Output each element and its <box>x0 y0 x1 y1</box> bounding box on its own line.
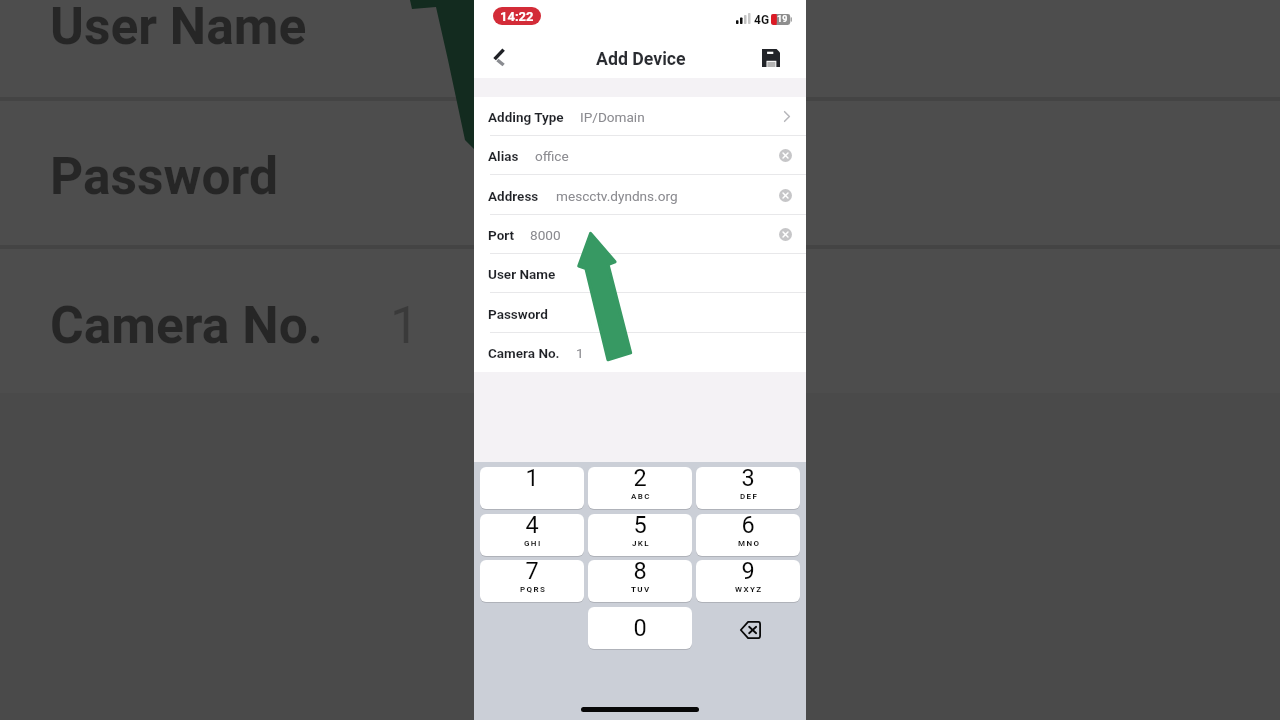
staticText: 2 <box>633 464 647 492</box>
button[interactable]: Back <box>474 36 520 78</box>
staticText: Address <box>488 188 539 204</box>
staticText: Password <box>488 306 548 322</box>
staticText: User Name <box>488 266 556 282</box>
staticText: MNO <box>738 539 761 548</box>
button[interactable]: User Name <box>474 254 806 293</box>
button[interactable]: 7 <box>480 560 584 602</box>
button[interactable]: 3 <box>696 467 800 509</box>
staticText: 1 <box>576 345 584 361</box>
staticText: 0 <box>633 614 647 642</box>
button[interactable]: 5 <box>588 514 692 556</box>
button[interactable]: Adding Type <box>474 97 806 136</box>
staticText: ABC <box>631 492 651 501</box>
button[interactable]: 0 <box>588 607 692 649</box>
staticText: Alias <box>488 148 519 164</box>
staticText: WXYZ <box>735 585 763 594</box>
staticText: Add Device <box>596 49 686 70</box>
button[interactable]: Save <box>748 37 794 79</box>
staticText: GHI <box>524 539 542 548</box>
staticText: 1 <box>525 464 539 492</box>
button[interactable]: Password <box>474 294 806 333</box>
staticText: TUV <box>631 585 651 594</box>
staticText: 3 <box>741 464 755 492</box>
staticText: User Name <box>50 0 307 56</box>
staticText: PQRS <box>520 585 547 594</box>
button[interactable]: Address <box>474 176 806 215</box>
button[interactable]: Camera No. <box>474 333 806 372</box>
staticText: Adding Type <box>488 109 564 125</box>
button[interactable]: Delete <box>696 607 800 649</box>
staticText: Camera No. <box>50 295 323 355</box>
button[interactable]: 4 <box>480 514 584 556</box>
staticText: 6 <box>741 511 755 539</box>
staticText: Password <box>50 146 278 206</box>
staticText: DEF <box>740 492 759 501</box>
staticText: 4G <box>754 13 770 27</box>
button[interactable]: 6 <box>696 514 800 556</box>
staticText: 1 <box>390 295 419 355</box>
staticText: 7 <box>525 557 539 585</box>
button[interactable]: 8 <box>588 560 692 602</box>
staticText: 4 <box>525 511 539 539</box>
staticText: 9 <box>741 557 755 585</box>
staticText: Camera No. <box>488 345 560 361</box>
staticText: 8000 <box>530 227 561 243</box>
button[interactable]: Alias <box>474 136 806 175</box>
button[interactable]: 1 <box>480 467 584 509</box>
staticText: mescctv.dyndns.org <box>556 188 678 204</box>
staticText: 14:22 <box>500 9 534 24</box>
staticText: 5 <box>633 511 647 539</box>
staticText: IP/Domain <box>580 109 645 125</box>
staticText: Port <box>488 227 515 243</box>
staticText: 8 <box>633 557 647 585</box>
button[interactable]: 2 <box>588 467 692 509</box>
button[interactable]: Port <box>474 215 806 254</box>
button[interactable]: 9 <box>696 560 800 602</box>
staticText: 19 <box>777 14 788 25</box>
staticText: office <box>535 148 569 164</box>
staticText: JKL <box>632 539 651 548</box>
